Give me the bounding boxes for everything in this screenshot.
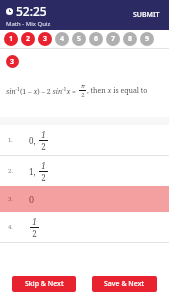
staticText: 2 — [32, 228, 37, 239]
button[interactable]: 1 — [4, 32, 18, 46]
button[interactable]: 4. — [0, 212, 169, 242]
staticText: 4. — [8, 223, 13, 231]
staticText: 3 — [10, 57, 15, 67]
staticText: 6 — [94, 34, 99, 44]
staticText: 5 — [77, 34, 82, 44]
staticText: 3. — [8, 195, 13, 203]
staticText: 52:25 — [16, 3, 47, 19]
button[interactable]: 3 — [38, 32, 52, 46]
staticText: 1, — [29, 166, 38, 177]
staticText: 0, — [29, 135, 38, 146]
staticText: 2. — [8, 167, 13, 175]
button[interactable]: 2. — [0, 156, 169, 186]
button[interactable]: Skip & Next — [12, 276, 76, 292]
button[interactable]: Save & Next — [92, 276, 157, 292]
button[interactable]: 7 — [106, 32, 120, 46]
staticText: 8 — [128, 34, 133, 44]
staticText: π — [81, 82, 85, 90]
staticText: 1. — [8, 136, 13, 144]
staticText: 2 — [26, 34, 31, 44]
button[interactable]: 8 — [123, 32, 137, 46]
button[interactable]: 4 — [55, 32, 69, 46]
button[interactable]: 1. — [0, 125, 169, 155]
staticText: 1 — [9, 34, 14, 44]
staticText: SUBMIT — [133, 10, 160, 20]
staticText: Save & Next — [104, 279, 145, 289]
staticText: Math - Mix Quiz — [6, 20, 51, 28]
staticText: 1 — [41, 160, 46, 171]
staticText: 9 — [145, 34, 150, 44]
staticText: 7 — [111, 34, 116, 44]
button[interactable]: SUBMIT — [130, 7, 163, 23]
button[interactable]: 2 — [21, 32, 35, 46]
staticText: Skip & Next — [25, 279, 64, 289]
button[interactable]: 6 — [89, 32, 103, 46]
staticText: 0 — [29, 193, 35, 205]
staticText: 2 — [41, 172, 46, 183]
staticText: 1 — [32, 216, 37, 227]
staticText: sin-1(1 – x) – 2 sin-1x = — [6, 86, 78, 96]
staticText: 3 — [43, 34, 48, 44]
staticText: , then x is equal to — [87, 86, 148, 96]
staticText: 1 — [41, 129, 46, 140]
button[interactable]: 5 — [72, 32, 86, 46]
staticText: 2 — [81, 91, 85, 99]
staticText: 2 — [41, 141, 46, 152]
button[interactable]: 3. — [0, 186, 169, 212]
button[interactable]: 9 — [140, 32, 154, 46]
staticText: 4 — [60, 34, 65, 44]
